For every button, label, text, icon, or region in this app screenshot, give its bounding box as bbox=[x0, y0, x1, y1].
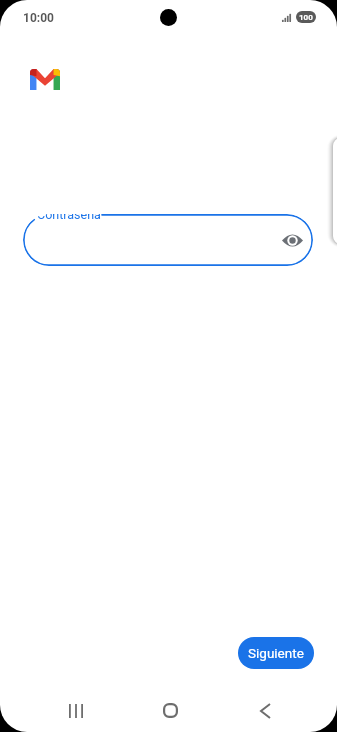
button[interactable]: Inicio bbox=[152, 692, 188, 728]
button[interactable]: Recientes bbox=[58, 693, 94, 729]
staticText: Siguiente bbox=[248, 645, 304, 661]
button[interactable]: Contraseña bbox=[23, 214, 313, 266]
staticText: 10:00 bbox=[23, 11, 54, 25]
staticText: Contraseña bbox=[37, 214, 101, 222]
button[interactable]: Siguiente bbox=[238, 637, 314, 669]
button[interactable]: Atrás bbox=[247, 693, 283, 729]
button[interactable]: Mostrar contraseña bbox=[277, 225, 307, 255]
staticText: 100 bbox=[299, 13, 313, 22]
